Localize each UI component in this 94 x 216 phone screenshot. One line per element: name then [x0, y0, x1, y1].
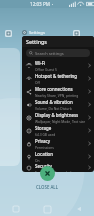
button[interactable]: Storage: [22, 124, 94, 137]
button[interactable]: Home: [32, 202, 63, 216]
button[interactable]: Sound & vibration: [22, 98, 94, 111]
button[interactable]: Phone: [5, 30, 12, 37]
button[interactable]: Back: [63, 202, 94, 216]
staticText: Settings: [29, 30, 45, 36]
button[interactable]: More connections: [22, 85, 94, 98]
staticText: Face unlock, Screen lock, Fingerprint: [35, 170, 88, 172]
button[interactable]: Security: [22, 163, 94, 172]
staticText: Nearby Share, VPN, printing: [35, 93, 79, 97]
staticText: Wallpaper, Night Mode, Text size: [35, 119, 85, 123]
button[interactable]: App: [73, 30, 80, 37]
staticText: Storage: [35, 125, 52, 131]
staticText: Hotspot & tethering: [35, 73, 78, 79]
staticText: Location: [35, 151, 53, 157]
staticText: Off: [35, 80, 40, 84]
button[interactable]: Settings: [22, 36, 94, 172]
button[interactable]: Display & brightness: [22, 111, 94, 124]
staticText: Wi-Fi: [35, 60, 46, 66]
button[interactable]: Recents: [0, 202, 32, 216]
staticText: Office Guest 5: [35, 67, 57, 71]
button[interactable]: Hotspot & tethering: [22, 72, 94, 85]
staticText: Search settings: [35, 51, 64, 56]
button[interactable]: Location: [22, 150, 94, 163]
staticText: Permissions: [35, 145, 54, 149]
staticText: Display & brightness: [35, 112, 79, 118]
staticText: CLOSE ALL: [36, 184, 59, 190]
staticText: More connections: [35, 86, 73, 92]
button[interactable]: Wi-Fi: [22, 59, 94, 72]
button[interactable]: Privacy: [22, 137, 94, 150]
staticText: 64.3 GB used: [35, 132, 56, 136]
other: Close all: [40, 166, 55, 181]
staticText: Settings: [26, 38, 47, 45]
button[interactable]: Search settings: [26, 49, 90, 57]
staticText: 12:03 PM: [30, 1, 50, 7]
button[interactable]: Settings: [22, 29, 94, 36]
staticText: Privacy: [35, 138, 51, 144]
button[interactable]: Close all: [36, 166, 59, 190]
staticText: Volume, Do Not Disturb: [35, 106, 72, 110]
button[interactable]: [0, 48, 20, 166]
staticText: Security: [35, 163, 52, 169]
staticText: On: [35, 158, 40, 162]
staticText: Sound & vibration: [35, 99, 73, 105]
